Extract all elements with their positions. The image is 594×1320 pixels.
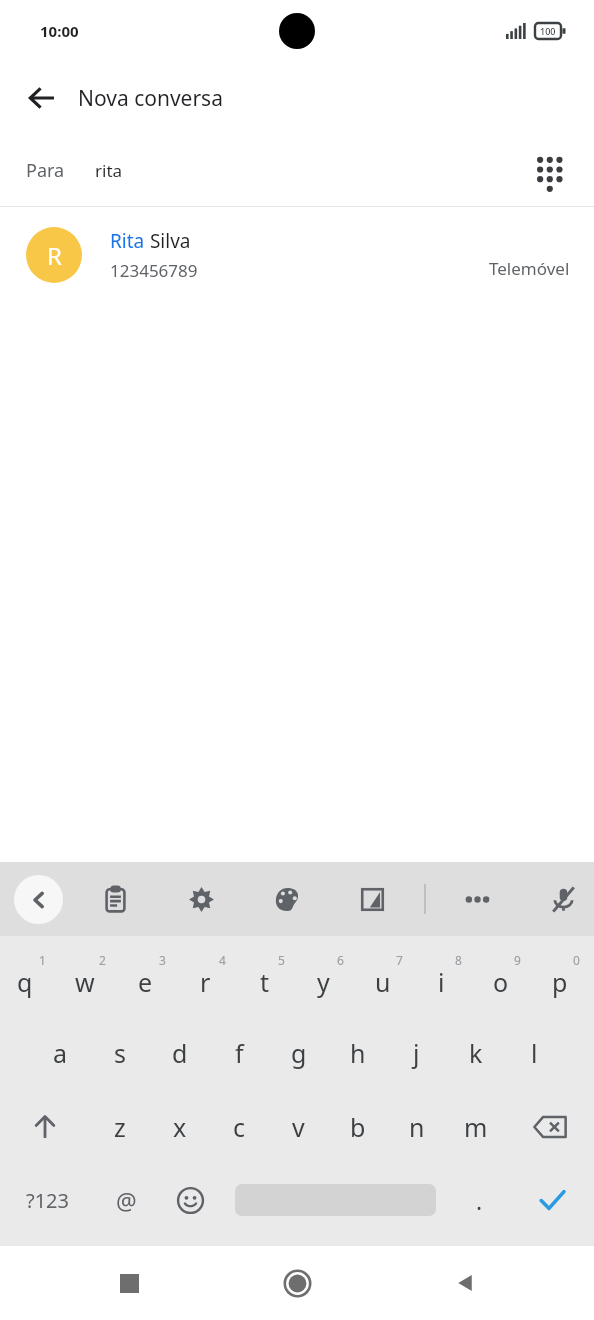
button[interactable]: @	[95, 1164, 157, 1236]
staticText: l	[531, 1036, 538, 1070]
staticText: p	[552, 965, 568, 999]
button[interactable]: t	[240, 942, 299, 1016]
staticText: m	[464, 1110, 488, 1144]
staticText: 1	[39, 952, 46, 968]
staticText: 9	[514, 952, 521, 968]
staticText: c	[233, 1110, 246, 1144]
staticText: 4	[219, 952, 226, 968]
staticText: 6	[337, 952, 344, 968]
staticText: a	[53, 1036, 68, 1070]
button[interactable]: f	[210, 1016, 269, 1090]
button[interactable]: p	[535, 942, 594, 1016]
staticText: j	[413, 1036, 420, 1070]
staticText: n	[409, 1110, 425, 1144]
staticText: k	[469, 1036, 483, 1070]
button[interactable]: z	[90, 1090, 150, 1164]
staticText: 100	[540, 25, 556, 37]
button[interactable]: j	[387, 1016, 446, 1090]
staticText: 10:00	[40, 21, 79, 41]
staticText: Telemóvel	[489, 257, 570, 280]
staticText: o	[493, 965, 509, 999]
staticText: v	[292, 1110, 305, 1144]
staticText: 3	[159, 952, 166, 968]
staticText: @	[116, 1185, 137, 1216]
button[interactable]: e	[120, 942, 180, 1016]
button[interactable]: Back	[436, 1254, 494, 1312]
staticText: b	[350, 1110, 366, 1144]
button[interactable]: n	[387, 1090, 446, 1164]
staticText: z	[114, 1110, 126, 1144]
staticText: 0	[573, 952, 580, 968]
button[interactable]: Collapse toolbar	[14, 875, 63, 924]
staticText: ?123	[26, 1187, 69, 1214]
staticText: 123456789	[110, 259, 198, 282]
button[interactable]: l	[505, 1016, 564, 1090]
button[interactable]: w	[60, 942, 120, 1016]
staticText: R	[47, 239, 62, 272]
button[interactable]: Shift	[0, 1090, 90, 1164]
button[interactable]: Settings	[175, 873, 227, 925]
staticText: r	[200, 965, 211, 999]
staticText: h	[350, 1036, 366, 1070]
staticText: Rita	[110, 228, 145, 254]
staticText: 7	[396, 952, 403, 968]
button[interactable]: q	[0, 942, 60, 1016]
button[interactable]: u	[358, 942, 417, 1016]
button[interactable]: s	[90, 1016, 150, 1090]
staticText: g	[291, 1036, 307, 1070]
staticText: q	[17, 965, 33, 999]
button[interactable]: v	[269, 1090, 328, 1164]
staticText: w	[75, 965, 95, 999]
button[interactable]: Clipboard	[89, 873, 141, 925]
staticText: rita	[95, 159, 123, 182]
button[interactable]: y	[299, 942, 358, 1016]
button[interactable]: b	[328, 1090, 387, 1164]
staticText: d	[172, 1036, 188, 1070]
staticText: f	[235, 1036, 244, 1070]
staticText: 2	[99, 952, 106, 968]
button[interactable]: m	[446, 1090, 505, 1164]
button[interactable]: g	[269, 1016, 328, 1090]
button[interactable]: Backspace	[505, 1090, 594, 1164]
button[interactable]: Emoji	[157, 1164, 223, 1236]
button[interactable]: Theme	[261, 873, 313, 925]
staticText: 5	[278, 952, 285, 968]
button[interactable]: Handwriting	[346, 873, 398, 925]
button[interactable]: x	[150, 1090, 210, 1164]
button[interactable]: More options	[451, 873, 503, 925]
button[interactable]: c	[210, 1090, 269, 1164]
button[interactable]: Back	[14, 70, 70, 126]
staticText: u	[375, 965, 391, 999]
staticText: s	[114, 1036, 126, 1070]
button[interactable]: r	[180, 942, 240, 1016]
staticText: Nova conversa	[78, 84, 223, 113]
button[interactable]: Home	[268, 1254, 326, 1312]
staticText: e	[138, 965, 153, 999]
staticText: Para	[26, 158, 65, 183]
button[interactable]: h	[328, 1016, 387, 1090]
button[interactable]: Dialpad	[524, 144, 576, 196]
staticText: t	[260, 965, 270, 999]
staticText: Silva	[145, 228, 191, 254]
button[interactable]: .	[448, 1164, 510, 1236]
button[interactable]: R	[0, 207, 594, 303]
button[interactable]: a	[30, 1016, 90, 1090]
button[interactable]: o	[476, 942, 535, 1016]
staticText: y	[317, 965, 330, 999]
staticText: i	[438, 965, 445, 999]
button[interactable]: d	[150, 1016, 210, 1090]
button[interactable]: Done	[510, 1164, 594, 1236]
button[interactable]: i	[417, 942, 476, 1016]
button[interactable]: Recents	[100, 1254, 158, 1312]
button[interactable]: Voice input off	[537, 873, 589, 925]
staticText: 8	[455, 952, 462, 968]
button[interactable]: k	[446, 1016, 505, 1090]
button[interactable]: ?123	[0, 1164, 95, 1236]
staticText: x	[173, 1110, 187, 1144]
staticText: .	[476, 1185, 483, 1216]
